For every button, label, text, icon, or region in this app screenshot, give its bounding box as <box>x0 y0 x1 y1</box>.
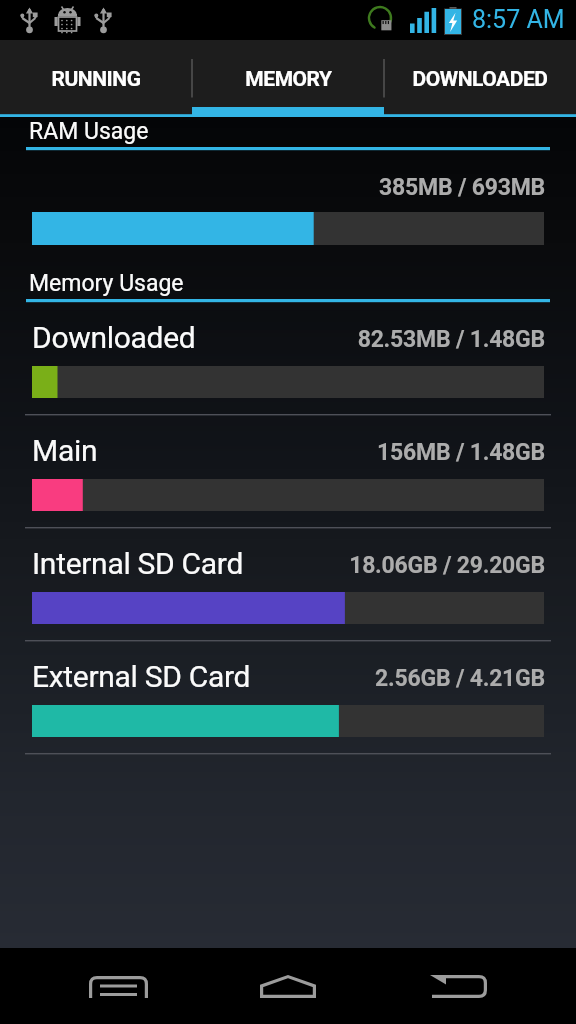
button[interactable]: DOWNLOADED <box>384 40 576 117</box>
staticText: 156MB / 1.48GB <box>0 439 545 466</box>
button[interactable]: RUNNING <box>0 40 192 117</box>
button[interactable]: Main <box>0 433 576 537</box>
staticText: MEMORY <box>245 67 332 92</box>
button[interactable]: Menu <box>61 956 177 1017</box>
button[interactable]: Internal SD Card <box>0 546 576 650</box>
staticText: Downloaded <box>32 320 196 355</box>
button[interactable]: External SD Card <box>0 659 576 763</box>
staticText: Internal SD Card <box>32 546 244 581</box>
button[interactable]: Downloaded <box>0 320 576 424</box>
staticText: Main <box>32 433 98 468</box>
staticText: 18.06GB / 29.20GB <box>0 552 545 579</box>
button[interactable]: Back <box>402 956 518 1017</box>
staticText: 82.53MB / 1.48GB <box>0 326 545 353</box>
staticText: RAM Usage <box>29 118 149 145</box>
button[interactable]: Home <box>230 956 346 1017</box>
staticText: 385MB / 693MB <box>0 174 545 201</box>
staticText: DOWNLOADED <box>412 67 548 92</box>
staticText: 8:57 AM <box>472 5 565 34</box>
staticText: External SD Card <box>32 659 251 694</box>
staticText: RUNNING <box>51 67 141 92</box>
staticText: Memory Usage <box>29 270 184 297</box>
button[interactable]: MEMORY <box>192 40 384 117</box>
staticText: 2.56GB / 4.21GB <box>0 665 545 692</box>
